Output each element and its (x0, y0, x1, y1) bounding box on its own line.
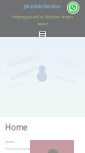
staticText: Helping you sell or find your dream (12, 14, 73, 19)
button[interactable]: Chat on WhatsApp (67, 1, 79, 14)
staticText: James (5, 139, 15, 144)
button[interactable] (30, 140, 74, 153)
staticText: Property consultant (5, 147, 32, 151)
staticText: Home (5, 122, 28, 133)
staticText: Jskarioki Realtor (24, 3, 61, 9)
staticText: home (37, 21, 47, 26)
button[interactable]: Menu (39, 31, 46, 38)
